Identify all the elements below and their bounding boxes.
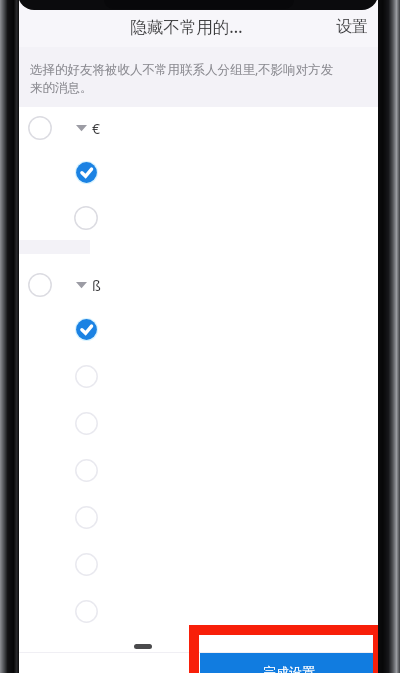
button[interactable]: ß: [18, 264, 378, 306]
staticText: €: [92, 119, 101, 138]
button[interactable]: [18, 306, 378, 353]
staticText: ß: [92, 276, 101, 295]
staticText: 隐藏不常用的…: [130, 15, 243, 38]
button[interactable]: 设置: [326, 11, 378, 43]
button[interactable]: [18, 149, 378, 195]
staticText: 完成设置: [263, 664, 315, 673]
button[interactable]: [18, 541, 378, 588]
button[interactable]: [18, 353, 378, 400]
button[interactable]: [18, 494, 378, 541]
button[interactable]: [18, 400, 378, 447]
button[interactable]: [18, 447, 378, 494]
button[interactable]: [18, 195, 378, 240]
button[interactable]: [18, 588, 378, 635]
other: Highlighted area: [194, 630, 378, 673]
button[interactable]: 完成设置: [200, 653, 378, 673]
staticText: 设置: [336, 17, 368, 37]
button[interactable]: €: [18, 107, 378, 149]
staticText: 选择的好友将被收人不常用联系人分组里,不影响对方发 来的消息。: [30, 61, 334, 96]
